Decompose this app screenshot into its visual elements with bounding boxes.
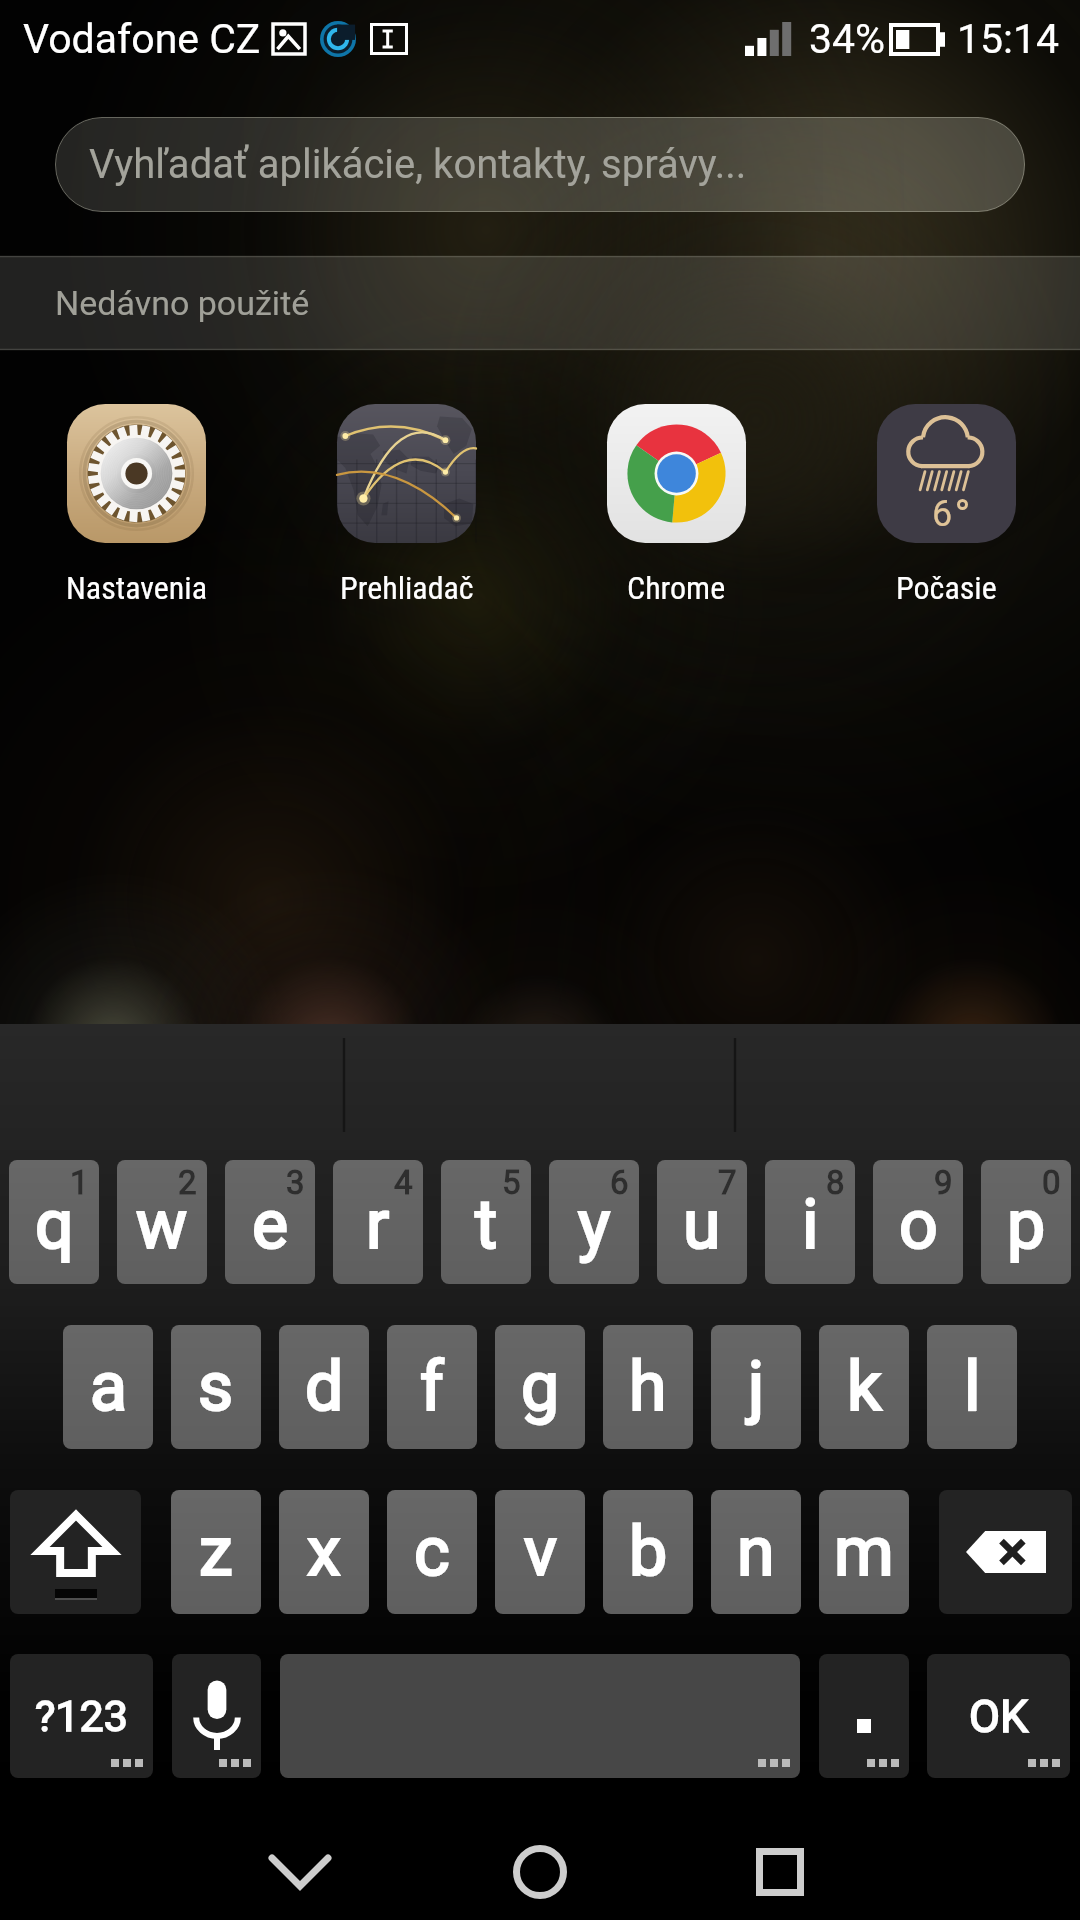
staticText: d xyxy=(305,1347,344,1427)
button[interactable]: Recent apps xyxy=(720,1824,840,1920)
button[interactable]: 4 xyxy=(333,1160,423,1284)
staticText: a xyxy=(90,1347,127,1427)
staticText: v xyxy=(524,1512,557,1592)
staticText: 5 xyxy=(502,1163,521,1202)
button[interactable]: n xyxy=(711,1490,801,1614)
staticText: Vodafone CZ xyxy=(23,15,261,63)
staticText: 3 xyxy=(286,1163,305,1202)
button[interactable]: g xyxy=(495,1325,585,1449)
button[interactable]: 9 xyxy=(873,1160,963,1284)
staticText: ?123 xyxy=(35,1691,128,1741)
staticText: z xyxy=(199,1512,233,1592)
staticText: 2 xyxy=(178,1163,197,1202)
button[interactable]: Period xyxy=(819,1654,909,1778)
staticText: h xyxy=(629,1347,667,1427)
staticText: 34% xyxy=(809,15,886,63)
button[interactable]: Home xyxy=(480,1824,600,1920)
button[interactable]: 3 xyxy=(225,1160,315,1284)
button[interactable]: Vyhľadať aplikácie, kontakty, správy... xyxy=(55,117,1025,212)
button[interactable]: f xyxy=(387,1325,477,1449)
staticText: n xyxy=(737,1512,775,1592)
button[interactable]: z xyxy=(171,1490,261,1614)
button[interactable]: Backspace xyxy=(939,1490,1072,1614)
button[interactable]: c xyxy=(387,1490,477,1614)
button[interactable]: 5 xyxy=(441,1160,531,1284)
button[interactable]: 6 xyxy=(811,393,1080,608)
button[interactable]: Symbols xyxy=(10,1654,153,1778)
button[interactable]: Hide keyboard xyxy=(240,1824,360,1920)
button[interactable]: Shift xyxy=(10,1490,141,1614)
staticText: g xyxy=(521,1347,560,1427)
staticText: Počasie xyxy=(896,569,997,607)
staticText: e xyxy=(252,1185,289,1265)
button[interactable]: Chrome xyxy=(541,393,811,608)
staticText: r xyxy=(366,1185,390,1265)
button[interactable]: Prehliadač xyxy=(271,393,541,608)
staticText: 4 xyxy=(394,1163,413,1202)
button[interactable]: 1 xyxy=(9,1160,99,1284)
staticText: i xyxy=(802,1185,819,1265)
staticText: Prehliadač xyxy=(340,569,474,607)
staticText: y xyxy=(578,1185,611,1265)
staticText: k xyxy=(847,1347,882,1427)
staticText: w xyxy=(136,1185,188,1265)
button[interactable]: h xyxy=(603,1325,693,1449)
staticText: 8 xyxy=(826,1163,845,1202)
button[interactable]: Nastavenia xyxy=(1,393,271,608)
staticText: 0 xyxy=(1042,1163,1061,1202)
staticText: Chrome xyxy=(627,569,726,607)
staticText: b xyxy=(629,1512,668,1592)
button[interactable]: 8 xyxy=(765,1160,855,1284)
staticText: Nedávno použité xyxy=(55,283,310,323)
staticText: q xyxy=(35,1185,74,1265)
button[interactable]: j xyxy=(711,1325,801,1449)
button[interactable]: m xyxy=(819,1490,909,1614)
staticText: 15:14 xyxy=(957,15,1060,63)
button[interactable]: Space xyxy=(280,1654,800,1778)
staticText: t xyxy=(475,1185,498,1265)
button[interactable]: 0 xyxy=(981,1160,1071,1284)
staticText: j xyxy=(748,1347,765,1427)
button[interactable]: 6 xyxy=(549,1160,639,1284)
staticText: c xyxy=(414,1512,450,1592)
staticText: u xyxy=(683,1185,721,1265)
staticText: m xyxy=(834,1512,894,1592)
button[interactable]: b xyxy=(603,1490,693,1614)
button[interactable]: k xyxy=(819,1325,909,1449)
button[interactable]: v xyxy=(495,1490,585,1614)
staticText: f xyxy=(420,1347,444,1427)
button[interactable]: 2 xyxy=(117,1160,207,1284)
staticText: s xyxy=(198,1347,234,1427)
button[interactable]: a xyxy=(63,1325,153,1449)
staticText: l xyxy=(964,1347,981,1427)
button[interactable]: l xyxy=(927,1325,1017,1449)
button[interactable]: OK xyxy=(927,1654,1070,1778)
button[interactable]: d xyxy=(279,1325,369,1449)
staticText: 6 xyxy=(932,493,953,535)
button[interactable]: x xyxy=(279,1490,369,1614)
staticText: x xyxy=(307,1512,341,1592)
button[interactable]: 7 xyxy=(657,1160,747,1284)
staticText: 9 xyxy=(934,1163,953,1202)
staticText: 7 xyxy=(718,1163,737,1202)
button[interactable]: Voice input xyxy=(172,1654,261,1778)
staticText: o xyxy=(899,1185,938,1265)
staticText: OK xyxy=(969,1690,1029,1743)
staticText: p xyxy=(1007,1185,1046,1265)
staticText: 1 xyxy=(70,1163,89,1202)
staticText: Nastavenia xyxy=(66,569,207,607)
staticText: 6 xyxy=(610,1163,629,1202)
staticText: Vyhľadať aplikácie, kontakty, správy... xyxy=(89,141,747,188)
button[interactable]: s xyxy=(171,1325,261,1449)
